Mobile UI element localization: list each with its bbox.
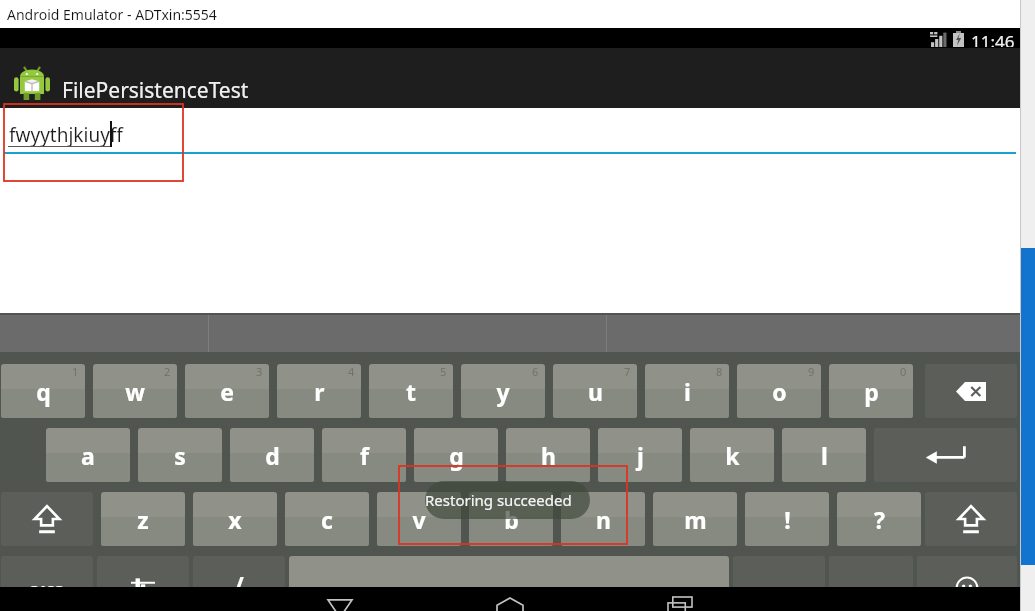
- staticText: 3: [256, 364, 263, 379]
- staticText: u: [588, 376, 603, 407]
- staticText: /: [234, 569, 244, 600]
- staticText: ?: [874, 504, 885, 535]
- button[interactable]: 6: [461, 364, 545, 418]
- staticText: t: [406, 376, 416, 407]
- staticText: i: [684, 376, 691, 407]
- staticText: n: [596, 504, 611, 535]
- staticText: r: [314, 376, 325, 407]
- staticText: 11:46: [971, 30, 1015, 47]
- button[interactable]: Recents: [595, 587, 765, 611]
- staticText: 0: [900, 364, 907, 379]
- staticText: b: [504, 504, 519, 535]
- staticText: e: [220, 376, 234, 407]
- staticText: 9: [808, 364, 815, 379]
- staticText: m: [684, 504, 707, 535]
- button[interactable]: h: [506, 428, 590, 482]
- staticText: p: [864, 376, 879, 407]
- staticText: w: [125, 376, 145, 407]
- button[interactable]: 1: [1, 364, 85, 418]
- button[interactable]: a: [46, 428, 130, 482]
- button[interactable]: v: [377, 492, 461, 546]
- button[interactable]: k: [690, 428, 774, 482]
- staticText: 7: [624, 364, 631, 379]
- button[interactable]: s: [138, 428, 222, 482]
- button[interactable]: n: [561, 492, 645, 546]
- button[interactable]: 8: [645, 364, 729, 418]
- button[interactable]: Shift: [925, 492, 1017, 546]
- button[interactable]: Space: [289, 556, 729, 600]
- staticText: 1: [72, 364, 79, 379]
- staticText: h: [541, 440, 556, 471]
- button[interactable]: Space: [829, 556, 913, 600]
- button[interactable]: Emoji: [917, 556, 1017, 600]
- button[interactable]: m: [653, 492, 737, 546]
- button[interactable]: b: [469, 492, 553, 546]
- staticText: Android Emulator - ADTxin:5554: [7, 5, 217, 24]
- staticText: o: [772, 376, 787, 407]
- staticText: y: [496, 376, 510, 407]
- staticText: fwyythjkiuyff: [9, 122, 123, 148]
- staticText: j: [637, 440, 644, 471]
- staticText: Restoring succeeded: [425, 490, 590, 510]
- button[interactable]: g: [414, 428, 498, 482]
- button[interactable]: /: [193, 556, 285, 600]
- button[interactable]: d: [230, 428, 314, 482]
- staticText: 6: [532, 364, 539, 379]
- staticText: v: [412, 504, 426, 535]
- button[interactable]: 2: [93, 364, 177, 418]
- button[interactable]: 3: [185, 364, 269, 418]
- staticText: 2: [164, 364, 171, 379]
- staticText: 8: [716, 364, 723, 379]
- staticText: a: [81, 440, 95, 471]
- button[interactable]: !: [745, 492, 829, 546]
- staticText: x: [228, 504, 242, 535]
- staticText: z: [137, 504, 149, 535]
- button[interactable]: Input method settings: [97, 556, 189, 600]
- button[interactable]: Enter: [874, 428, 1017, 482]
- button[interactable]: ?: [837, 492, 921, 546]
- staticText: d: [265, 440, 280, 471]
- button[interactable]: Back: [255, 587, 425, 611]
- staticText: FilePersistenceTest: [62, 76, 249, 105]
- button[interactable]: 5: [369, 364, 453, 418]
- staticText: s: [174, 440, 186, 471]
- staticText: !: [784, 504, 791, 535]
- button[interactable]: 9: [737, 364, 821, 418]
- staticText: k: [725, 440, 740, 471]
- staticText: g: [449, 440, 464, 471]
- button[interactable]: x: [193, 492, 277, 546]
- staticText: q: [36, 376, 51, 407]
- staticText: f: [360, 440, 369, 471]
- button[interactable]: 4: [277, 364, 361, 418]
- button[interactable]: Shift: [1, 492, 93, 546]
- button[interactable]: j: [598, 428, 682, 482]
- button[interactable]: f: [322, 428, 406, 482]
- staticText: c: [321, 504, 333, 535]
- button[interactable]: 0: [829, 364, 913, 418]
- button[interactable]: c: [285, 492, 369, 546]
- button[interactable]: Home: [425, 587, 595, 611]
- button[interactable]: Backspace: [925, 364, 1017, 418]
- staticText: 5: [440, 364, 447, 379]
- button[interactable]: z: [101, 492, 185, 546]
- staticText: 4: [348, 364, 355, 379]
- staticText: l: [821, 440, 828, 471]
- button[interactable]: 7: [553, 364, 637, 418]
- staticText: ?123: [31, 580, 64, 600]
- button[interactable]: l: [782, 428, 866, 482]
- button[interactable]: ?123: [1, 556, 93, 600]
- button[interactable]: Space: [733, 556, 825, 600]
